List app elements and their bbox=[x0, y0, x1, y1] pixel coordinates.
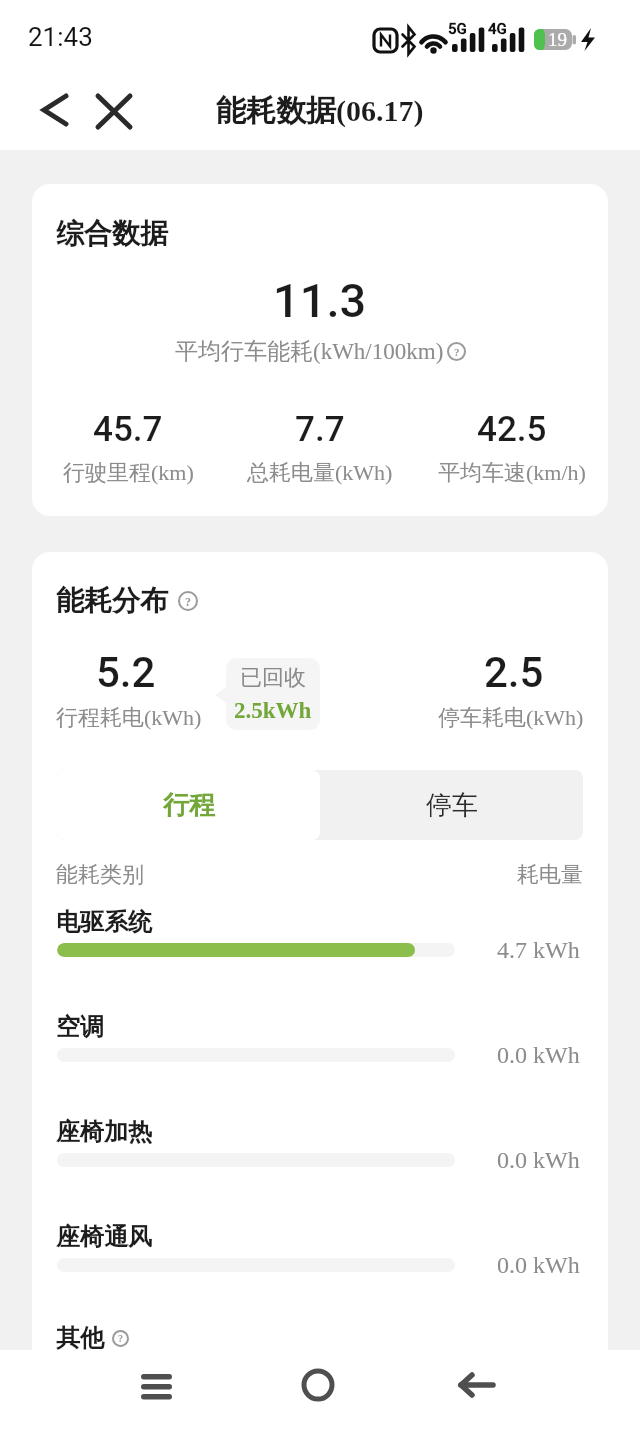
staticText: 2.5kWh bbox=[234, 698, 312, 723]
staticText: 0.0 kWh bbox=[497, 1042, 580, 1069]
staticText: 其他 bbox=[56, 1323, 104, 1350]
staticText: 停车 bbox=[426, 789, 478, 822]
staticText: 4G bbox=[488, 20, 507, 38]
staticText: 平均车速(km/h) bbox=[438, 459, 586, 487]
staticText: 行程 bbox=[163, 789, 215, 822]
staticText: 综合数据 bbox=[56, 216, 168, 251]
staticText: 能耗类别 bbox=[56, 861, 144, 889]
staticText: 11.3 bbox=[273, 273, 367, 328]
staticText: 停车耗电(kWh) bbox=[438, 704, 584, 732]
staticText: 平均行车能耗(kWh/100km) bbox=[175, 337, 444, 366]
staticText: ? bbox=[185, 595, 191, 608]
staticText: 座椅通风 bbox=[56, 1222, 152, 1252]
staticText: 空调 bbox=[56, 1012, 104, 1042]
staticText: ? bbox=[118, 1333, 123, 1344]
staticText: 行驶里程(km) bbox=[63, 459, 194, 487]
staticText: 45.7 bbox=[93, 409, 163, 450]
staticText: 7.7 bbox=[295, 409, 345, 450]
staticText: 电驱系统 bbox=[56, 907, 152, 937]
staticText: 能耗分布 bbox=[56, 583, 168, 618]
staticText: 行程耗电(kWh) bbox=[56, 704, 202, 732]
staticText: 总耗电量(kWh) bbox=[247, 459, 393, 487]
staticText: 5.2 bbox=[96, 648, 156, 697]
staticText: 能耗数据(06.17) bbox=[216, 92, 424, 130]
staticText: ? bbox=[454, 346, 460, 358]
staticText: 21:43 bbox=[28, 22, 93, 52]
staticText: 4.7 kWh bbox=[497, 937, 580, 964]
staticText: 19 bbox=[548, 29, 567, 50]
staticText: 5G bbox=[448, 20, 467, 38]
staticText: 42.5 bbox=[477, 409, 547, 450]
staticText: 座椅加热 bbox=[56, 1117, 152, 1147]
staticText: 已回收 bbox=[240, 664, 306, 692]
staticText: 0.0 kWh bbox=[497, 1252, 580, 1279]
staticText: 耗电量 bbox=[517, 861, 583, 889]
staticText: 0.0 kWh bbox=[497, 1147, 580, 1174]
staticText: 2.5 bbox=[484, 648, 544, 697]
